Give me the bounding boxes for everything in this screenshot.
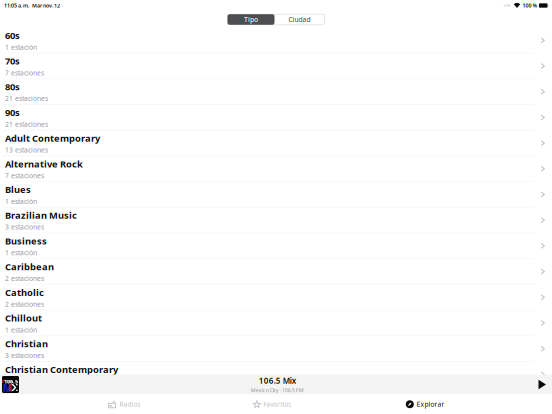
button[interactable]: Explorar — [406, 394, 444, 414]
staticText: Alternative Rock — [5, 158, 83, 170]
staticText: Chillout — [5, 312, 42, 324]
staticText: Caribbean — [5, 260, 54, 273]
button[interactable]: Catholic — [0, 285, 552, 311]
staticText: Explorar — [416, 400, 444, 409]
staticText: Mexico City · 106.5 FM — [251, 386, 304, 394]
staticText: 70s — [5, 55, 20, 67]
staticText: 2 estaciones — [5, 300, 44, 309]
button[interactable]: Chillout — [0, 311, 552, 336]
staticText: 106.5 — [4, 378, 18, 385]
staticText: 3 estaciones — [5, 351, 44, 360]
staticText: 1 estación — [5, 43, 37, 52]
staticText: 21 estaciones — [5, 94, 48, 103]
button[interactable]: Christian Contemporary — [0, 362, 552, 388]
staticText: 60s — [5, 29, 20, 41]
staticText: Brazilian Music — [5, 209, 77, 221]
staticText: 7 estaciones — [5, 171, 44, 180]
button[interactable]: Play — [535, 377, 549, 392]
staticText: 11:05 a. m. — [4, 2, 29, 9]
button[interactable]: Brazilian Music — [0, 208, 552, 234]
staticText: 100 % — [522, 2, 537, 9]
button[interactable]: 80s — [0, 79, 552, 105]
button[interactable]: Alternative Rock — [0, 156, 552, 182]
button[interactable]: Christian — [0, 336, 552, 362]
staticText: 106.5 Mix — [259, 375, 296, 386]
staticText: Christian Contemporary — [5, 363, 118, 376]
staticText: 21 estaciones — [5, 120, 48, 129]
staticText: 6 estaciones — [5, 377, 44, 386]
button[interactable]: 60s — [0, 28, 552, 54]
button[interactable]: 90s — [0, 105, 552, 131]
staticText: Favoritos — [263, 400, 291, 409]
button[interactable]: Adult Contemporary — [0, 131, 552, 156]
staticText: Christian — [5, 337, 48, 350]
staticText: Catholic — [5, 286, 44, 298]
staticText: Adult Contemporary — [5, 132, 100, 144]
button[interactable]: Ciudad — [274, 14, 324, 25]
button[interactable]: Business — [0, 234, 552, 259]
button[interactable]: Tipo — [227, 14, 274, 25]
staticText: 3 estaciones — [5, 223, 44, 231]
staticText: Blues — [5, 183, 31, 196]
staticText: M — [3, 381, 13, 395]
staticText: 80s — [5, 80, 20, 93]
staticText: Tipo — [244, 15, 258, 24]
staticText: 2 estaciones — [5, 274, 44, 283]
button[interactable]: Radios — [108, 394, 141, 414]
button[interactable]: Favoritos — [254, 394, 291, 414]
staticText: Radios — [120, 400, 141, 409]
staticText: Mar nov. 12 — [32, 2, 60, 9]
staticText: Business — [5, 235, 47, 247]
staticText: 1 estación — [5, 248, 37, 257]
button[interactable]: Blues — [0, 182, 552, 208]
button[interactable]: Caribbean — [0, 259, 552, 285]
staticText: 1 estación — [5, 325, 37, 334]
button[interactable]: 70s — [0, 54, 552, 79]
staticText: 7 estaciones — [5, 68, 44, 77]
staticText: 13 estaciones — [5, 145, 48, 154]
staticText: 90s — [5, 106, 20, 119]
staticText: 1 estación — [5, 197, 37, 206]
staticText: Ciudad — [288, 15, 310, 24]
